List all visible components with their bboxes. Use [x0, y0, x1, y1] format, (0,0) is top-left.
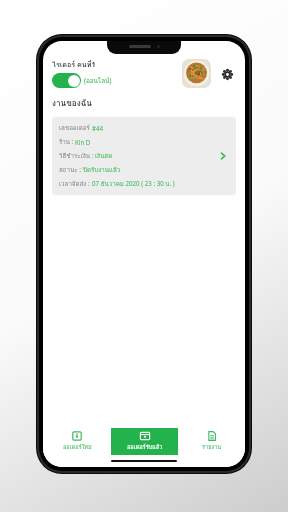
button[interactable]: Settings: [218, 65, 236, 83]
button[interactable]: ออเดอร์ใหม่: [43, 428, 111, 455]
staticText: เวลาจัดส่ง :: [59, 179, 92, 189]
staticText: เงินสด: [95, 151, 113, 161]
staticText: งานของฉัน: [52, 97, 92, 110]
button[interactable]: รายงาน: [178, 428, 245, 455]
button[interactable]: Toggle online: [52, 73, 81, 88]
staticText: ออเดอร์รับแล้ว: [127, 443, 163, 452]
button[interactable]: ออเดอร์รับแล้ว: [111, 428, 178, 455]
staticText: รายงาน: [202, 443, 222, 452]
staticText: ออเดอร์ใหม่: [63, 443, 92, 452]
button[interactable]: Profile photo: [182, 59, 211, 88]
button[interactable]: เลขออเดอร์: [52, 117, 236, 195]
staticText: ไรเดอร์ คนที่1: [52, 59, 96, 70]
staticText: วิธีชำระเงิน :: [59, 151, 95, 161]
staticText: เลขออเดอร์: [59, 123, 92, 133]
staticText: ร้าน :: [59, 137, 75, 147]
staticText: ปิดรับงานแล้ว: [83, 165, 121, 175]
staticText: Kin D: [75, 138, 91, 146]
staticText: 07 ธันวาคม 2020 ( 23 : 30 น. ): [92, 179, 175, 189]
staticText: #44: [92, 124, 104, 132]
staticText: สถานะ :: [59, 165, 83, 175]
staticText: (ออนไลน์): [84, 76, 112, 86]
